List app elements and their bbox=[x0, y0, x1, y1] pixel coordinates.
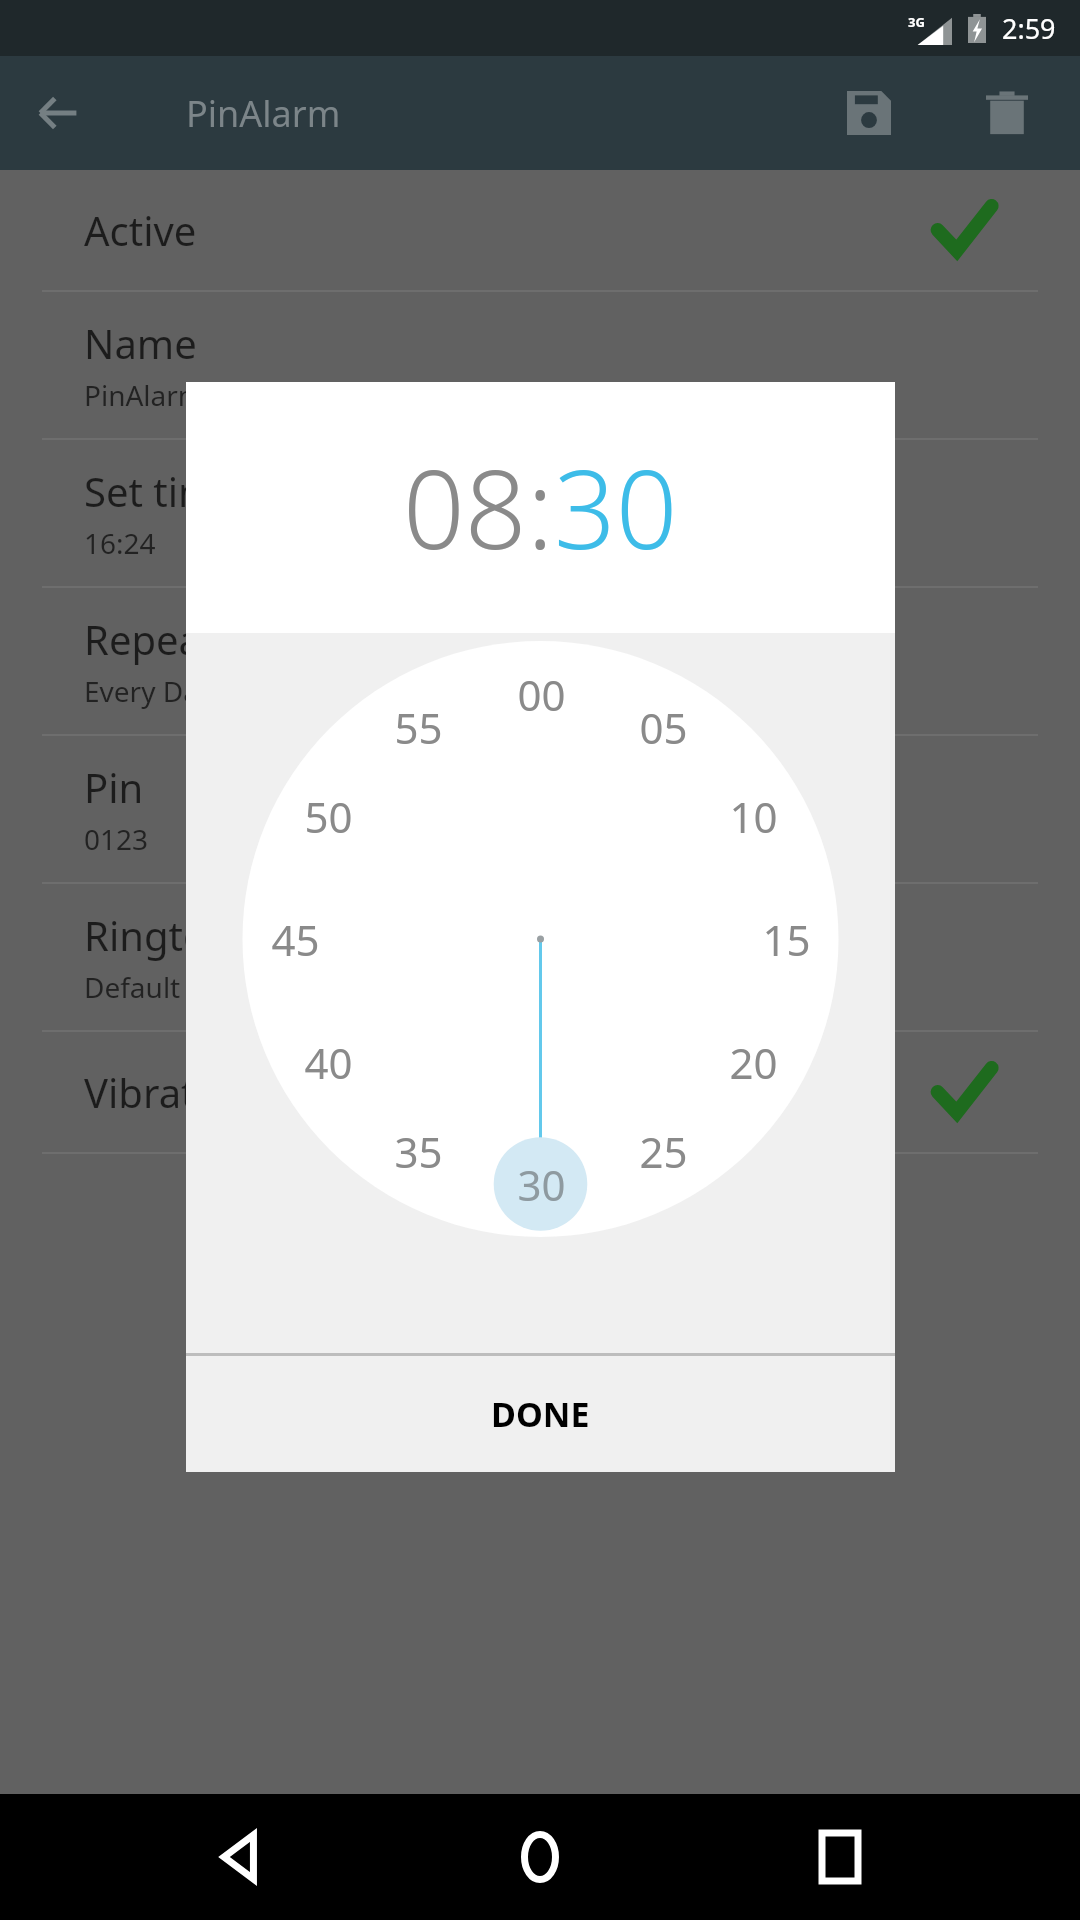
staticText: Name bbox=[84, 316, 197, 370]
staticText: Pin bbox=[84, 760, 144, 814]
button[interactable]: 40 bbox=[283, 1031, 373, 1093]
staticText: Repeat bbox=[84, 612, 216, 666]
staticText: : bbox=[527, 434, 554, 581]
staticText: 16:24 bbox=[84, 524, 156, 562]
staticText: Every Day bbox=[84, 672, 214, 710]
staticText: PinAlarm bbox=[186, 89, 341, 138]
staticText: 20 bbox=[729, 1034, 778, 1091]
button[interactable]: Vibrate bbox=[0, 1032, 1080, 1152]
staticText: 50 bbox=[304, 788, 353, 845]
button[interactable]: 35 bbox=[373, 1120, 463, 1182]
staticText: 00 bbox=[517, 666, 566, 723]
button[interactable]: Back bbox=[180, 1797, 300, 1917]
staticText: 45 bbox=[271, 911, 320, 968]
button[interactable]: Active bbox=[0, 170, 1080, 290]
button[interactable]: Repeat bbox=[0, 588, 1080, 734]
button[interactable]: 00 bbox=[496, 663, 586, 725]
button[interactable]: Set time bbox=[0, 440, 1080, 586]
staticText: 35 bbox=[394, 1123, 443, 1180]
staticText: 55 bbox=[394, 699, 443, 756]
button[interactable]: Name bbox=[0, 292, 1080, 438]
staticText: 15 bbox=[762, 911, 811, 968]
button[interactable]: 20 bbox=[708, 1031, 798, 1093]
button[interactable]: DONE bbox=[186, 1356, 895, 1472]
staticText: PinAlarm bbox=[84, 376, 205, 414]
button[interactable]: Pin bbox=[0, 736, 1080, 882]
staticText: 0123 bbox=[84, 820, 149, 858]
staticText: 08 bbox=[403, 434, 527, 581]
button[interactable]: Recents bbox=[780, 1797, 900, 1917]
staticText: Vibrate bbox=[84, 1065, 219, 1119]
button[interactable]: Back bbox=[20, 75, 96, 151]
staticText: DONE bbox=[491, 1391, 590, 1437]
button[interactable]: Save bbox=[826, 70, 912, 156]
button[interactable]: Home bbox=[480, 1797, 600, 1917]
button[interactable]: 50 bbox=[283, 785, 373, 847]
staticText: 25 bbox=[639, 1123, 688, 1180]
staticText: 3G bbox=[908, 13, 925, 31]
button[interactable]: 25 bbox=[618, 1120, 708, 1182]
button[interactable]: 10 bbox=[708, 785, 798, 847]
staticText: 05 bbox=[639, 699, 688, 756]
button[interactable]: 30 bbox=[554, 434, 678, 581]
button[interactable]: 08 bbox=[403, 434, 527, 581]
button[interactable]: 05 bbox=[618, 696, 708, 758]
staticText: Ringtone bbox=[84, 908, 255, 962]
staticText: 30 bbox=[517, 1156, 566, 1213]
staticText: Default bbox=[84, 968, 181, 1006]
staticText: Active bbox=[84, 203, 197, 257]
button[interactable]: 30 bbox=[496, 1153, 586, 1215]
button[interactable]: Delete bbox=[964, 70, 1050, 156]
staticText: 40 bbox=[304, 1034, 353, 1091]
staticText: 2:59 bbox=[1002, 10, 1056, 47]
button[interactable]: 45 bbox=[250, 908, 340, 970]
staticText: 10 bbox=[729, 788, 778, 845]
button[interactable]: 15 bbox=[741, 908, 831, 970]
staticText: 30 bbox=[554, 434, 678, 581]
button[interactable]: 55 bbox=[373, 696, 463, 758]
button[interactable]: Ringtone bbox=[0, 884, 1080, 1030]
staticText: Set time bbox=[84, 464, 239, 518]
